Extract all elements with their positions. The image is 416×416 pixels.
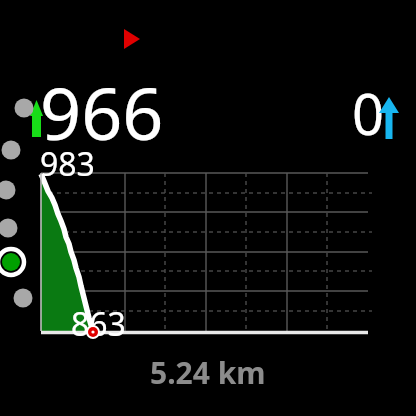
button[interactable]: Elevation profile screen xyxy=(0,0,416,416)
